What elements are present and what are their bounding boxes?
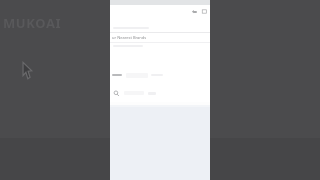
button[interactable] [110,71,210,79]
button[interactable]: Reply [191,8,198,15]
button[interactable]: Search [110,88,210,98]
staticText: ur Nearest Brands [112,35,147,40]
button[interactable]: Search [113,90,120,97]
staticText: MUKOAI [3,14,62,32]
button[interactable]: More options [201,8,208,15]
